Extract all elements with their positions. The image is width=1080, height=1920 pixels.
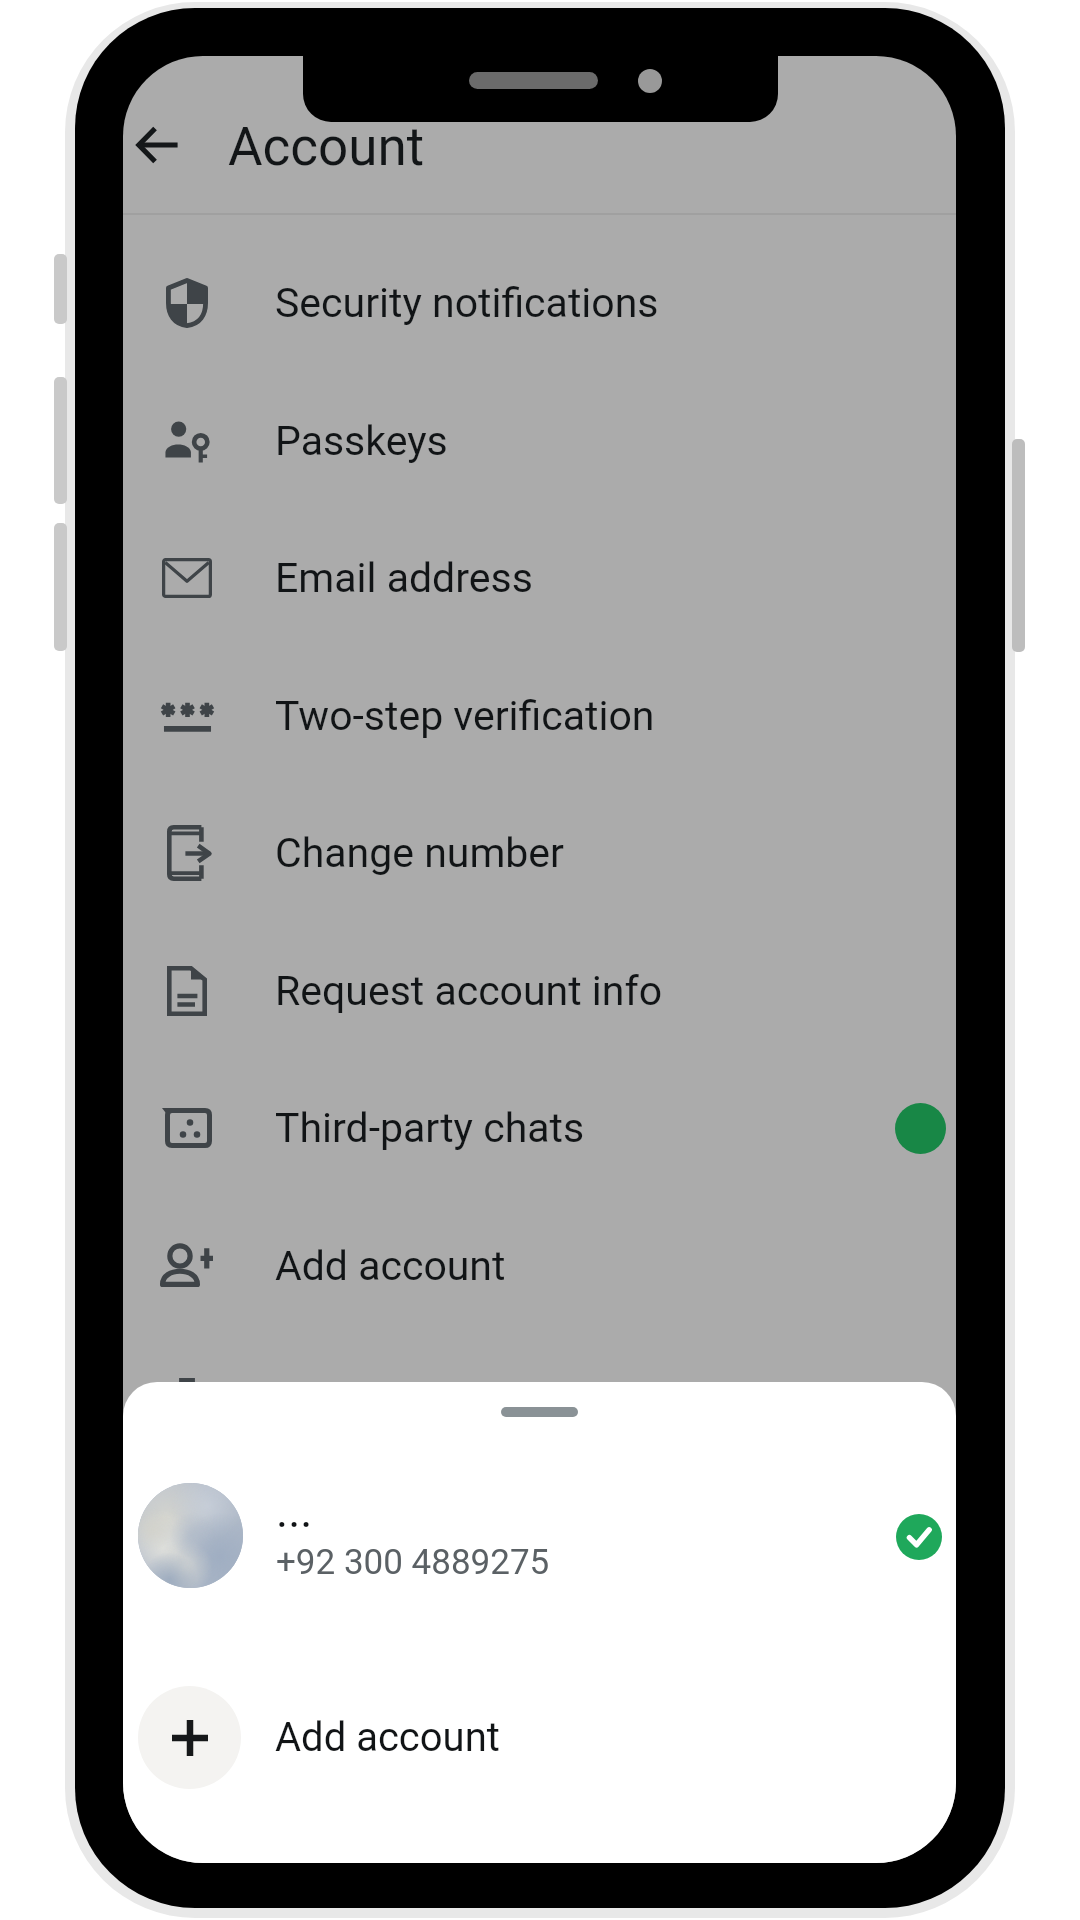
button[interactable]: Delete account bbox=[123, 1335, 956, 1471]
button[interactable]: Add account bbox=[123, 1672, 956, 1802]
button[interactable]: ... bbox=[123, 1460, 956, 1610]
staticText: Request account info bbox=[275, 967, 663, 1015]
staticText: Change number bbox=[275, 829, 565, 877]
staticText: Account bbox=[228, 116, 425, 178]
other: Selected account bbox=[896, 1514, 942, 1560]
staticText: Passkeys bbox=[275, 417, 448, 465]
staticText: Security notifications bbox=[275, 279, 659, 327]
button[interactable]: Add account bbox=[123, 1198, 956, 1334]
button[interactable]: Request account info bbox=[123, 923, 956, 1059]
button[interactable]: Email address bbox=[123, 510, 956, 646]
staticText: Third-party chats bbox=[275, 1104, 585, 1152]
button[interactable]: Third-party chats status bbox=[895, 1103, 946, 1154]
button[interactable]: Back bbox=[123, 105, 197, 185]
staticText: Email address bbox=[275, 554, 533, 602]
button[interactable]: Third-party chats bbox=[123, 1060, 956, 1196]
staticText: Add account bbox=[275, 1714, 500, 1761]
staticText: ... bbox=[276, 1484, 313, 1538]
button[interactable]: Two-step verification bbox=[123, 648, 956, 784]
staticText: +92 300 4889275 bbox=[276, 1542, 550, 1583]
button[interactable]: Passkeys bbox=[123, 373, 956, 509]
button[interactable]: Security notifications bbox=[123, 235, 956, 371]
button[interactable]: Change number bbox=[123, 785, 956, 921]
staticText: Delete account bbox=[275, 1379, 548, 1427]
staticText: Add account bbox=[275, 1242, 506, 1290]
staticText: Two-step verification bbox=[275, 692, 655, 740]
